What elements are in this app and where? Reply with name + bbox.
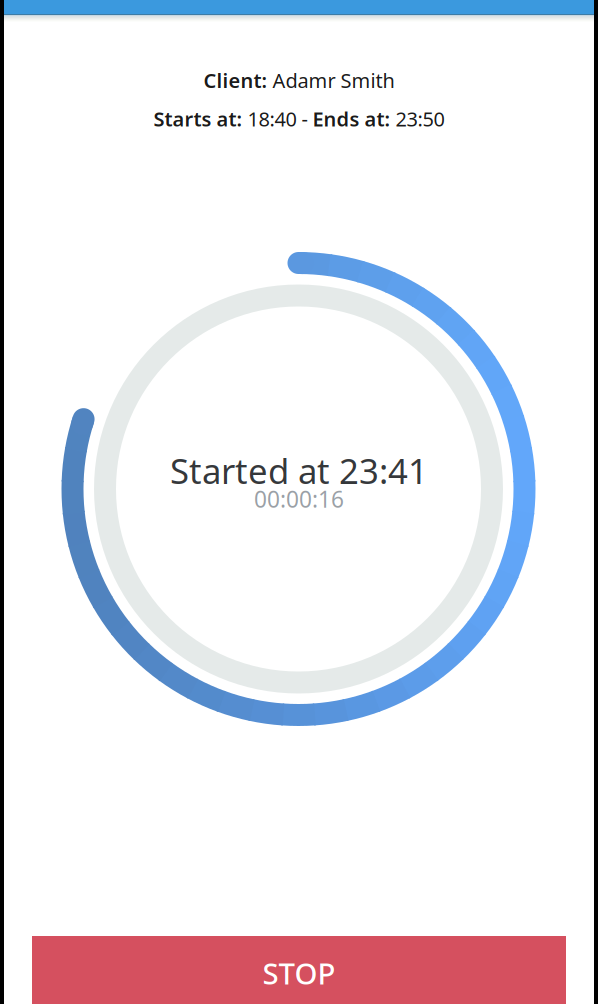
staticText: Ends at: — [312, 106, 395, 132]
staticText: Client: — [203, 67, 272, 94]
staticText: 00:00:16 — [254, 484, 344, 514]
staticText: STOP — [262, 953, 335, 992]
button[interactable]: STOP — [32, 936, 566, 1004]
staticText: 18:40 - — [247, 106, 312, 132]
staticText: 23:50 — [395, 106, 444, 132]
staticText: Adamr Smith — [272, 67, 394, 94]
staticText: Starts at: — [153, 106, 247, 132]
staticText: Started at 23:41 — [170, 447, 428, 493]
